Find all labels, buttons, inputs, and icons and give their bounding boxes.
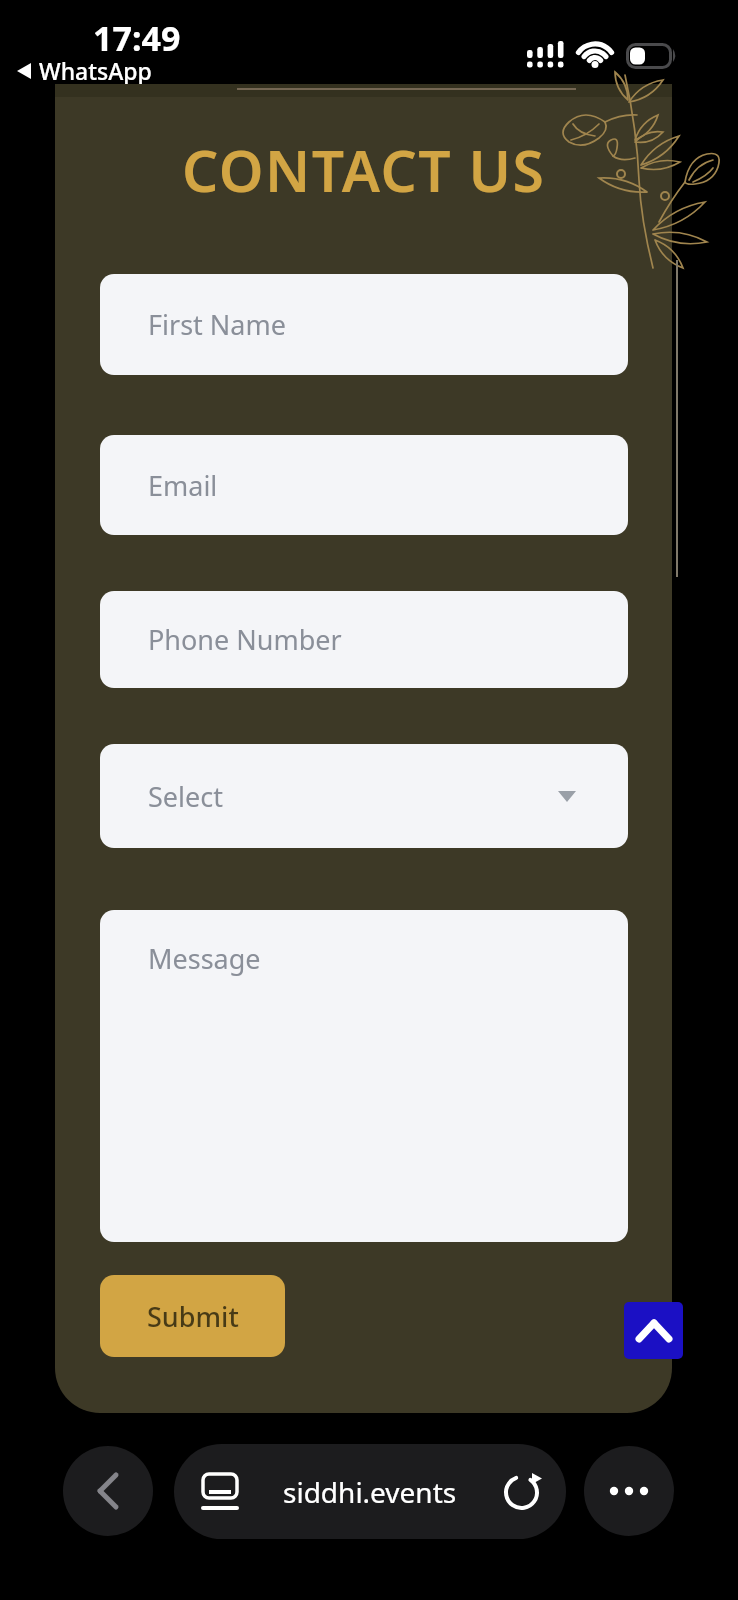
staticText: Submit [147,1298,239,1335]
button[interactable] [63,1446,153,1536]
staticText: WhatsApp [39,55,152,86]
staticText: First Name [148,306,286,343]
staticText: Phone Number [148,621,342,658]
button[interactable]: Message [100,910,628,1242]
button[interactable]: Phone Number [100,591,628,688]
button[interactable] [584,1446,674,1536]
staticText: 17:49 [93,15,181,61]
button[interactable]: Select [100,744,628,848]
staticText: CONTACT US [182,131,546,209]
staticText: siddhi.events [283,1473,457,1511]
button[interactable]: First Name [100,274,628,375]
button[interactable] [624,1302,683,1359]
button[interactable]: Submit [100,1275,285,1357]
button[interactable]: WhatsApp [15,55,152,86]
button[interactable]: siddhi.events [174,1444,566,1539]
staticText: Select [148,778,223,815]
button[interactable]: Email [100,435,628,535]
staticText: Email [148,467,218,504]
staticText: Message [148,940,261,977]
